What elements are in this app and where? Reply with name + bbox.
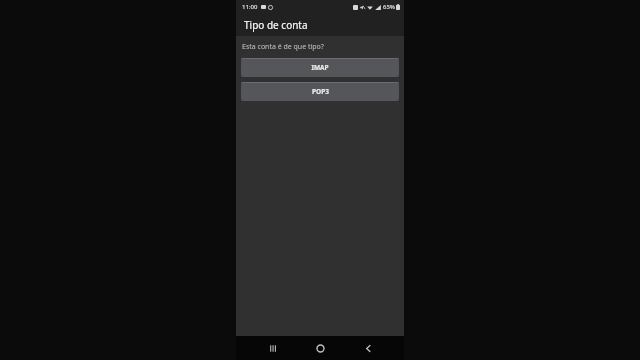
button[interactable]: Home — [308, 336, 332, 360]
staticText: IMAP — [311, 63, 329, 72]
button[interactable]: IMAP — [241, 58, 399, 77]
staticText: Esta conta é de que tipo? — [242, 42, 324, 52]
button[interactable]: POP3 — [241, 82, 399, 101]
button[interactable]: Back — [356, 336, 380, 360]
staticText: 65% — [383, 3, 395, 11]
staticText: Tipo de conta — [244, 18, 308, 32]
button[interactable]: Recent apps — [260, 336, 284, 360]
staticText: POP3 — [312, 87, 329, 96]
staticText: 11:00 — [242, 3, 258, 11]
